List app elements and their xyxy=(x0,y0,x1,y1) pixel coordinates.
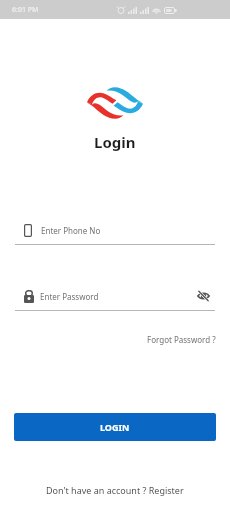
button[interactable]: Show password xyxy=(197,287,215,305)
staticText: 6:01 PM xyxy=(12,5,39,15)
button[interactable]: Forgot Password ? xyxy=(147,334,216,345)
button[interactable]: Don't have an account ? Register xyxy=(0,484,230,496)
staticText: Login xyxy=(94,132,136,152)
staticText: Enter Password xyxy=(40,291,99,302)
staticText: Enter Phone No xyxy=(41,225,101,236)
staticText: LOGIN xyxy=(100,421,130,433)
staticText: Forgot Password ? xyxy=(147,334,216,345)
staticText: Don't have an account ? Register xyxy=(46,484,184,496)
button[interactable]: LOGIN xyxy=(14,413,216,441)
